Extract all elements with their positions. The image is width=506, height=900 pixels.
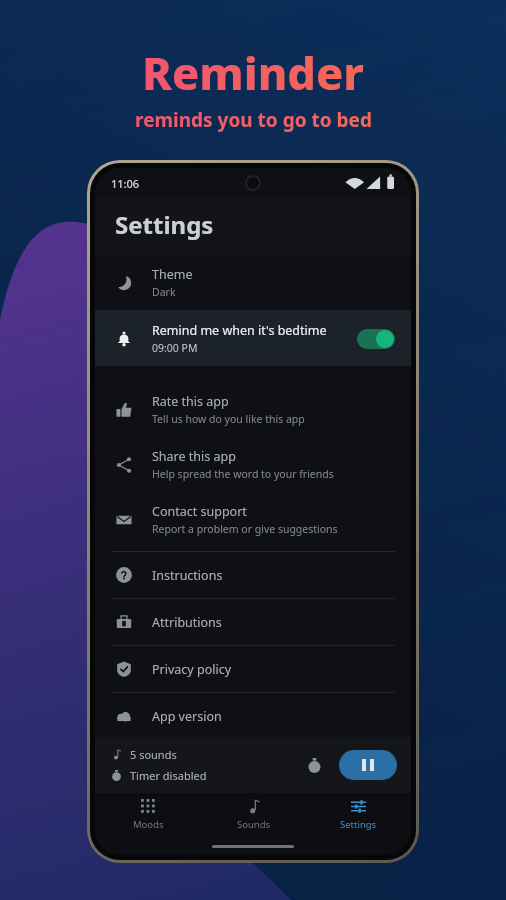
staticText: Share this app [152,448,236,465]
button[interactable]: Remind me when it's bedtime [95,311,411,366]
button[interactable]: Sounds [201,796,306,834]
button[interactable]: Moods [95,796,201,834]
button[interactable]: Theme [95,255,411,310]
staticText: Contact support [152,503,247,520]
staticText: Remind me when it's bedtime [152,322,327,339]
staticText: 5 sounds [130,747,177,762]
button[interactable]: Instructions [95,552,411,598]
button[interactable]: Settings [306,796,411,834]
staticText: Instructions [152,567,223,584]
button[interactable]: Pause [339,750,397,780]
staticText: Tell us how do you like this app [152,412,305,426]
staticText: Reminder [142,42,364,103]
staticText: Privacy policy [152,661,232,678]
button[interactable]: App version [95,693,411,739]
staticText: Sounds [237,818,271,831]
staticText: 09:00 PM [152,341,198,355]
button[interactable]: Sleep timer [301,752,327,778]
button[interactable]: Share this app [95,437,411,492]
staticText: Timer disabled [130,768,207,783]
button[interactable]: Attributions [95,599,411,645]
staticText: Settings [115,208,214,241]
staticText: Report a problem or give suggestions [152,522,338,536]
staticText: Rate this app [152,393,229,410]
button[interactable]: Rate this app [95,382,411,437]
button[interactable]: Contact support [95,492,411,547]
button[interactable]: Bedtime reminder toggle [357,329,395,349]
staticText: Help spread the word to your friends [152,467,334,481]
staticText: Dark [152,285,176,299]
staticText: 11:06 [111,176,140,191]
staticText: Moods [133,818,164,831]
staticText: Attributions [152,614,222,631]
staticText: App version [152,708,222,725]
staticText: Settings [340,818,377,831]
button[interactable]: Privacy policy [95,646,411,692]
staticText: Theme [152,266,193,283]
staticText: reminds you to go to bed [135,107,372,133]
